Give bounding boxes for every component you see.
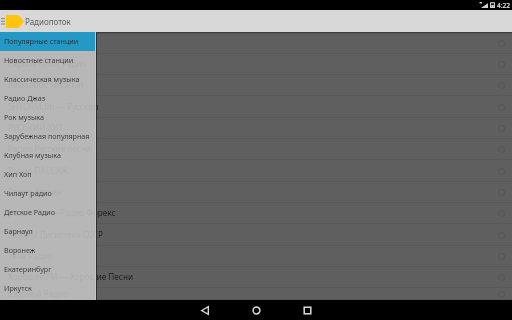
staticText: Радиопоток — [25, 16, 71, 27]
staticText: Радио Рекорд — [8, 37, 63, 48]
staticText: ХИТ FM Дискотека СССР — [8, 229, 103, 240]
button[interactable]: Европа Плюс Радио — [0, 54, 512, 75]
button[interactable]: Радио Апшин — [0, 182, 512, 203]
button[interactable]: Популярные станции — [0, 32, 95, 51]
button[interactable]: Иркутск — [0, 279, 95, 298]
button[interactable]: РУССКИЙ ХИТ — [0, 118, 512, 139]
button[interactable]: Воронеж — [0, 241, 95, 260]
button[interactable]: Радио ПАССАЖ — [0, 160, 512, 182]
button[interactable]: Record.fm — Радио Форекс — [0, 203, 512, 224]
staticText: Радио Апшин — [8, 186, 62, 197]
button[interactable]: Радио Джаз — [0, 89, 95, 108]
button[interactable]: Связной Радио — [0, 288, 512, 300]
staticText: Record.fm — Радио Форекс — [8, 207, 116, 218]
button[interactable]: Чилаут радио — [0, 184, 95, 203]
staticText: Клубная музыка — [4, 150, 61, 160]
button[interactable]: Радио Рекорд — [0, 32, 512, 54]
button[interactable]: Екатеринбург — [0, 260, 95, 279]
staticText: Relaxation Hisset.in — [8, 79, 84, 90]
button[interactable]: Твоё Радио — [0, 246, 512, 267]
button[interactable]: Классическая музыка — [0, 70, 95, 89]
button[interactable]: Рок музыка — [0, 108, 95, 127]
staticText: Радио Джаз — [4, 93, 46, 103]
button[interactable]: SHTORM.fm — Русский — [0, 96, 512, 118]
button[interactable]: Хип Хоп — [0, 165, 95, 184]
staticText: 4:22 — [497, 1, 511, 10]
button[interactable]: Open navigation drawer — [0, 10, 6, 32]
staticText: Рок музыка — [4, 112, 45, 122]
staticText: Хип Хоп — [4, 169, 32, 179]
staticText: Зарубежная популярная — [4, 131, 90, 141]
staticText: Связной Радио — [8, 288, 68, 299]
staticText: Воронеж — [4, 245, 36, 255]
staticText: Радио Русские песни — [8, 143, 91, 154]
button[interactable]: Recent apps — [292, 300, 322, 320]
staticText: Детское Радио — [4, 207, 55, 217]
staticText: Иркутск — [4, 283, 32, 293]
button[interactable]: Хорошее FM — Хорошие Песни — [0, 267, 512, 288]
staticText: Классическая музыка — [4, 74, 80, 84]
button[interactable]: ХИТ FM Дискотека СССР — [0, 224, 512, 246]
button[interactable]: Радио Русские песни — [0, 139, 512, 160]
staticText: Барнаул — [4, 226, 33, 236]
button[interactable]: Детское Радио — [0, 203, 95, 222]
staticText: Популярные станции — [4, 36, 79, 46]
staticText: Радио ПАССАЖ — [8, 165, 69, 176]
staticText: Хорошее FM — Хорошие Песни — [8, 271, 134, 282]
button[interactable]: Relaxation Hisset.in — [0, 75, 512, 96]
button[interactable]: Зарубежная популярная — [0, 127, 95, 146]
staticText: SHTORM.fm — Русский — [8, 101, 99, 112]
staticText: Новостные станции — [4, 55, 74, 65]
button[interactable]: Клубная музыка — [0, 146, 95, 165]
staticText: Европа Плюс Радио — [8, 58, 87, 69]
staticText: Екатеринбург — [4, 264, 52, 274]
button[interactable]: Back — [190, 300, 220, 320]
staticText: Твоё Радио — [8, 250, 53, 261]
button[interactable]: Новостные станции — [0, 51, 95, 70]
button[interactable]: Барнаул — [0, 222, 95, 241]
button[interactable]: Home — [241, 300, 271, 320]
staticText: Чилаут радио — [4, 188, 52, 198]
